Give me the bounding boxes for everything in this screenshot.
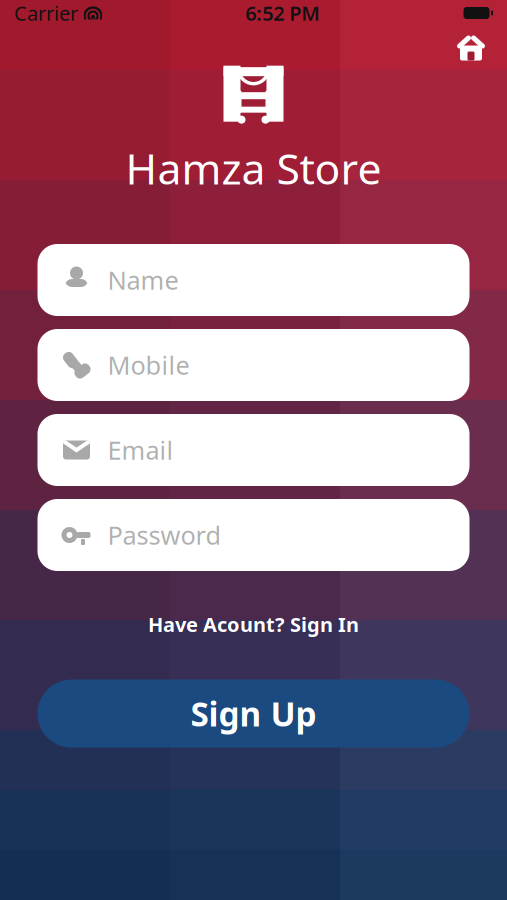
button[interactable]: Name bbox=[37, 244, 469, 316]
staticText: 6:52 PM bbox=[245, 0, 320, 26]
staticText: Mobile bbox=[107, 348, 189, 382]
staticText: Have Acount? Sign In bbox=[148, 611, 359, 638]
staticText: Carrier bbox=[14, 0, 78, 26]
button[interactable]: Have Acount? Sign In bbox=[136, 605, 371, 644]
button[interactable]: Password bbox=[37, 499, 469, 571]
staticText: Password bbox=[107, 518, 221, 552]
staticText: Hamza Store bbox=[125, 140, 381, 196]
staticText: Sign Up bbox=[190, 691, 316, 736]
staticText: Email bbox=[107, 433, 173, 467]
button[interactable]: Mobile bbox=[37, 329, 469, 401]
staticText: Name bbox=[107, 263, 178, 297]
button[interactable]: Email bbox=[37, 414, 469, 486]
button[interactable]: Sign Up bbox=[37, 680, 469, 748]
button[interactable]: Home bbox=[449, 26, 493, 70]
